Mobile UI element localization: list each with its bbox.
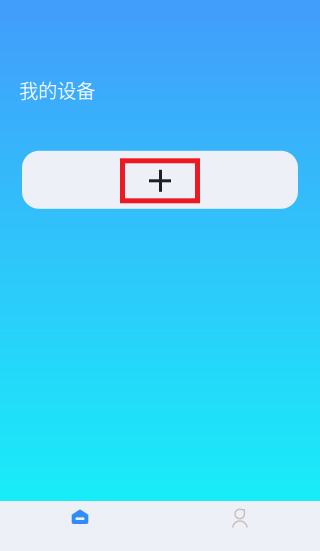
button[interactable]: 添加设备 [22, 151, 298, 209]
staticText: 我的设备 [19, 76, 95, 104]
button[interactable]: 我的 [160, 501, 320, 551]
button[interactable]: 首页 [0, 501, 160, 551]
